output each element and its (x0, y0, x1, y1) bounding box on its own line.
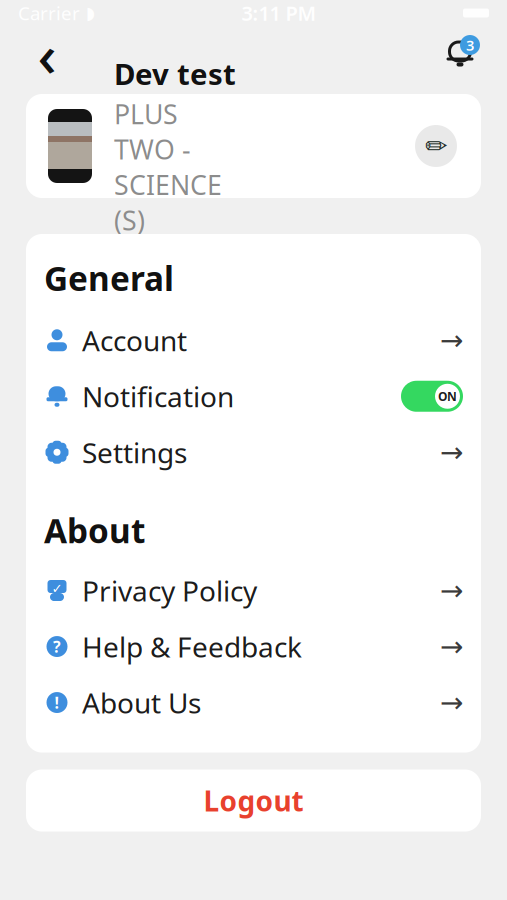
staticText: Help & Feedback (82, 628, 302, 665)
staticText: 3:11 PM (241, 0, 316, 26)
staticText: ! (54, 692, 59, 713)
button[interactable]: ! (26, 674, 481, 730)
staticText: Account (82, 322, 187, 359)
staticText: ON (438, 388, 457, 404)
staticText: About Us (82, 684, 201, 721)
button[interactable]: Account (26, 312, 481, 368)
button[interactable]: Notification (26, 368, 481, 424)
staticText: Notification (82, 378, 234, 415)
staticText: Privacy Policy (82, 572, 257, 609)
staticText: Settings (82, 434, 187, 471)
staticText: General (44, 256, 174, 300)
staticText: 3 (466, 35, 474, 55)
staticText: → (440, 631, 463, 662)
staticText: → (440, 436, 463, 468)
staticText: ✓ (51, 581, 62, 596)
staticText: → (440, 575, 463, 606)
button[interactable]: ? (26, 618, 481, 674)
staticText: About (44, 508, 145, 553)
button[interactable]: Back (24, 31, 70, 77)
button[interactable]: Notifications (437, 31, 483, 77)
staticText: → (440, 324, 463, 356)
staticText: Logout (203, 782, 303, 819)
staticText: ? (53, 636, 61, 657)
staticText: ‹ (37, 15, 56, 93)
staticText: PLUS TWO - SCIENCE (S) (114, 96, 222, 238)
staticText: ✏ (425, 131, 447, 161)
staticText: Carrier (18, 1, 80, 25)
button[interactable]: Edit profile (413, 123, 459, 169)
button[interactable]: Settings (26, 424, 481, 480)
staticText: Dev test (114, 54, 236, 93)
staticText: → (440, 687, 463, 718)
button[interactable]: Logout (26, 769, 481, 831)
button[interactable]: ✓ (26, 562, 481, 618)
staticText: ◗ (86, 3, 95, 23)
